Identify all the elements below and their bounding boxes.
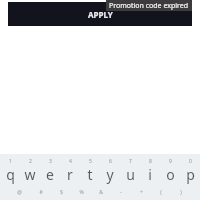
staticText: $ (60, 189, 63, 196)
button[interactable]: ( (151, 189, 171, 200)
staticText: q (6, 165, 15, 184)
staticText: y (106, 165, 114, 184)
staticText: u (126, 165, 135, 184)
button[interactable]: & (91, 189, 111, 200)
button[interactable]: 7 (120, 158, 140, 184)
staticText: 3 (49, 158, 52, 165)
staticText: @ (17, 189, 22, 196)
staticText: Promotion code expired (109, 1, 189, 11)
staticText: 1 (9, 158, 12, 165)
staticText: + (140, 189, 143, 196)
staticText: ) (180, 189, 182, 196)
button[interactable]: % (71, 189, 91, 200)
button[interactable]: 1 (0, 158, 20, 184)
staticText: o (166, 165, 175, 184)
staticText: 8 (149, 158, 152, 165)
button[interactable]: ) (171, 189, 191, 200)
staticText: 4 (69, 158, 72, 165)
button[interactable]: $ (51, 189, 71, 200)
button[interactable]: + (131, 189, 151, 200)
staticText: 9 (169, 158, 172, 165)
staticText: 0 (189, 158, 192, 165)
staticText: APPLY (88, 9, 113, 20)
staticText: 7 (129, 158, 132, 165)
button[interactable]: 4 (60, 158, 80, 184)
staticText: e (46, 165, 54, 184)
button[interactable]: 2 (20, 158, 40, 184)
staticText: % (79, 189, 84, 196)
button[interactable]: 6 (100, 158, 120, 184)
button[interactable]: - (111, 189, 131, 200)
staticText: 5 (89, 158, 92, 165)
button[interactable]: APPLY (8, 2, 192, 26)
staticText: 6 (109, 158, 112, 165)
staticText: p (186, 165, 195, 184)
staticText: & (99, 189, 103, 196)
staticText: 2 (29, 158, 32, 165)
staticText: t (87, 165, 93, 184)
button[interactable]: 8 (140, 158, 160, 184)
staticText: # (39, 189, 43, 196)
staticText: r (67, 165, 73, 184)
button[interactable]: 9 (160, 158, 180, 184)
button[interactable]: 0 (180, 158, 200, 184)
staticText: ( (160, 189, 162, 196)
button[interactable]: 5 (80, 158, 100, 184)
staticText: w (24, 165, 36, 184)
button[interactable]: Promotion code expired (106, 0, 192, 11)
staticText: - (120, 189, 122, 196)
staticText: i (148, 165, 152, 184)
button[interactable]: # (30, 189, 51, 200)
button[interactable]: 3 (40, 158, 60, 184)
button[interactable]: @ (9, 189, 30, 200)
